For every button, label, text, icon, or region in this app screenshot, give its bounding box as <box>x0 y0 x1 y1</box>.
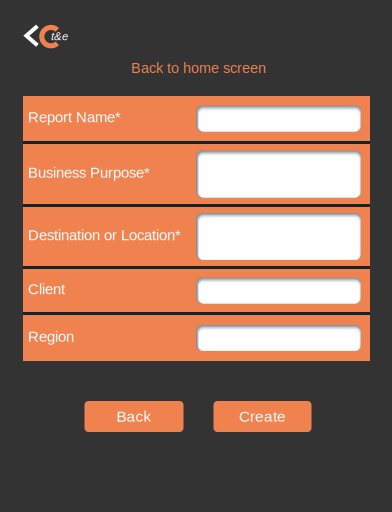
button[interactable]: Create <box>213 401 311 432</box>
staticText: Region <box>28 328 74 345</box>
staticText: Back <box>116 408 151 425</box>
staticText: Report Name* <box>28 109 121 125</box>
button[interactable]: Back <box>0 0 83 58</box>
staticText: Client <box>28 281 65 297</box>
button[interactable]: Back to home screen <box>0 58 392 78</box>
staticText: t&e <box>51 30 68 43</box>
staticText: Back to home screen <box>131 60 266 76</box>
staticText: Business Purpose* <box>28 164 150 181</box>
staticText: Create <box>239 408 286 425</box>
staticText: Destination or Location* <box>28 227 181 243</box>
button[interactable]: Back <box>84 401 183 432</box>
